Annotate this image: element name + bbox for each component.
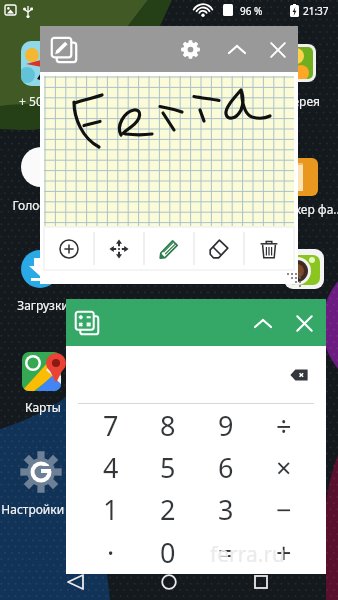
button[interactable]: Back: [64, 571, 86, 593]
staticText: Настройки Go..: [1, 501, 90, 517]
staticText: 8: [160, 407, 176, 444]
button[interactable]: Home: [158, 571, 180, 593]
staticText: +: [276, 534, 292, 571]
button[interactable]: Notes: [51, 37, 77, 63]
staticText: Карты: [25, 399, 61, 415]
button[interactable]: 6: [197, 446, 255, 488]
button[interactable]: 2: [139, 488, 197, 531]
button[interactable]: Settings: [176, 35, 205, 64]
button[interactable]: Add: [44, 227, 94, 270]
button[interactable]: 5: [139, 446, 197, 488]
button[interactable]: Close: [263, 35, 292, 64]
staticText: 1: [103, 491, 119, 528]
button[interactable]: Move: [94, 227, 144, 270]
staticText: Голосово..: [12, 197, 73, 213]
button[interactable]: Pen: [144, 227, 194, 270]
staticText: 9: [218, 407, 234, 444]
button[interactable]: Backspace: [286, 362, 312, 388]
button[interactable]: 1: [82, 488, 139, 531]
staticText: −: [276, 491, 292, 528]
staticText: 6: [218, 449, 234, 486]
staticText: Загрузки: [17, 297, 69, 313]
staticText: 0: [160, 534, 176, 571]
staticText: 7: [103, 407, 119, 444]
staticText: Менеджер фа..: [253, 201, 338, 217]
staticText: ·: [107, 534, 115, 571]
button[interactable]: +: [255, 531, 313, 574]
button[interactable]: Close: [290, 309, 319, 338]
button[interactable]: 3: [197, 488, 255, 531]
staticText: ÷: [276, 407, 292, 444]
staticText: 2: [160, 491, 176, 528]
staticText: 96 %: [240, 4, 263, 18]
button[interactable]: Collapse: [222, 35, 251, 64]
button[interactable]: −: [255, 488, 313, 531]
button[interactable]: ·: [82, 531, 139, 574]
button[interactable]: ×: [255, 446, 313, 488]
staticText: 5: [160, 449, 176, 486]
button[interactable]: 9: [197, 404, 255, 446]
staticText: 4: [103, 449, 119, 486]
staticText: + 50 игр: [19, 93, 66, 109]
staticText: Галерея: [273, 93, 320, 109]
button[interactable]: 8: [139, 404, 197, 446]
button[interactable]: 4: [82, 446, 139, 488]
button[interactable]: Eraser: [194, 227, 244, 270]
button[interactable]: 7: [82, 404, 139, 446]
staticText: =: [218, 534, 234, 571]
button[interactable]: =: [197, 531, 255, 574]
button[interactable]: Delete: [244, 227, 294, 270]
staticText: ferra.ru: [210, 540, 286, 569]
staticText: 21:37: [303, 4, 329, 18]
button[interactable]: 0: [139, 531, 197, 574]
button[interactable]: Collapse: [248, 309, 277, 338]
staticText: 3: [218, 491, 234, 528]
staticText: ×: [276, 449, 292, 486]
button[interactable]: Calculator: [75, 311, 99, 335]
button[interactable]: Recents: [250, 571, 272, 593]
button[interactable]: ÷: [255, 404, 313, 446]
